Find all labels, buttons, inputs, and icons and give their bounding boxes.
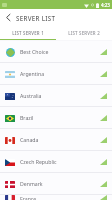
button[interactable]: Canada xyxy=(0,129,112,150)
staticText: 4:23 xyxy=(101,2,110,8)
staticText: LIST SERVER 2 xyxy=(68,30,100,36)
button[interactable]: Brazil xyxy=(0,107,112,128)
button[interactable]: Czech Republic xyxy=(0,151,112,172)
button[interactable]: Best Choice xyxy=(0,41,112,62)
staticText: Best Choice xyxy=(20,48,49,55)
staticText: LIST SERVER 1 xyxy=(12,30,44,36)
button[interactable]: France xyxy=(0,195,112,200)
staticText: Brazil xyxy=(20,114,34,121)
button[interactable]: LIST SERVER 2 xyxy=(56,26,112,39)
staticText: Argentina xyxy=(20,70,45,77)
staticText: SERVER LIST xyxy=(16,14,56,22)
staticText: Czech Republic xyxy=(20,158,57,165)
button[interactable]: Back xyxy=(3,12,14,23)
staticText: France xyxy=(20,195,37,200)
staticText: Denmark xyxy=(20,180,43,187)
button[interactable]: Denmark xyxy=(0,173,112,194)
button[interactable]: Argentina xyxy=(0,63,112,84)
staticText: Australia xyxy=(20,92,42,99)
staticText: Canada xyxy=(20,136,39,143)
button[interactable]: LIST SERVER 1 xyxy=(0,26,56,39)
button[interactable]: Australia xyxy=(0,85,112,106)
